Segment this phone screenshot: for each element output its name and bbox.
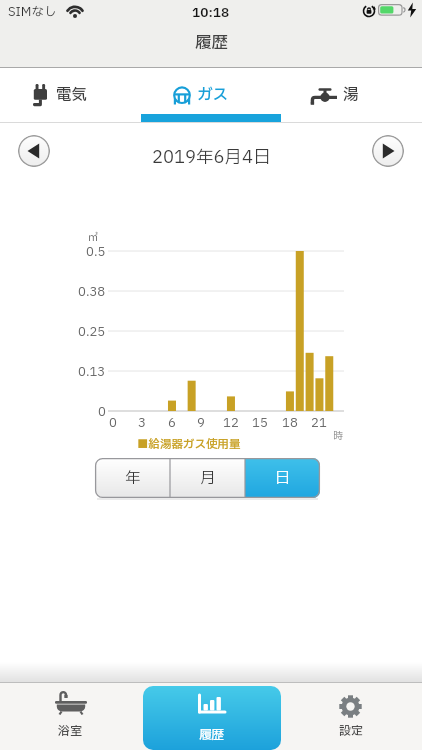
staticText: 6 (168, 414, 176, 433)
button[interactable] (372, 135, 404, 167)
staticText: 日 (275, 467, 291, 490)
staticText: 15 (252, 414, 268, 433)
button[interactable]: 設定 (281, 683, 422, 750)
button[interactable]: 履歴 (143, 686, 281, 750)
staticText: 履歴 (199, 726, 225, 745)
staticText: 設定 (339, 722, 364, 740)
staticText: 年 (125, 467, 141, 490)
staticText: ■給湯器ガス使用量 (137, 436, 241, 453)
staticText: 10:18 (192, 3, 230, 22)
staticText: 時 (333, 428, 343, 443)
staticText: ガス (197, 84, 229, 107)
staticText: 12 (223, 414, 239, 433)
staticText: 0.13 (78, 363, 106, 382)
staticText: 18 (282, 414, 298, 433)
staticText: 0.25 (78, 323, 106, 342)
button[interactable]: 日 (245, 458, 320, 498)
staticText: 電気 (56, 84, 88, 107)
button[interactable]: 月 (170, 458, 245, 498)
staticText: ㎥ (88, 230, 99, 246)
staticText: 浴室 (58, 722, 83, 740)
button[interactable]: ガス (140, 68, 281, 122)
button[interactable]: 浴室 (0, 683, 141, 750)
staticText: 0 (98, 403, 106, 422)
staticText: 湯 (343, 84, 359, 107)
button[interactable]: 電気 (0, 68, 140, 122)
staticText: 9 (197, 414, 205, 433)
button[interactable]: 年 (95, 458, 170, 498)
staticText: 0 (109, 414, 117, 433)
staticText: SIMなし (8, 3, 57, 22)
button[interactable]: 湯 (281, 68, 422, 122)
staticText: 3 (138, 414, 146, 433)
staticText: 21 (311, 414, 327, 433)
staticText: 0.38 (78, 283, 106, 302)
staticText: 0.5 (86, 243, 106, 262)
staticText: 履歴 (195, 31, 228, 56)
staticText: 2019年6月4日 (152, 144, 271, 170)
staticText: 月 (200, 467, 216, 490)
button[interactable] (18, 135, 50, 167)
